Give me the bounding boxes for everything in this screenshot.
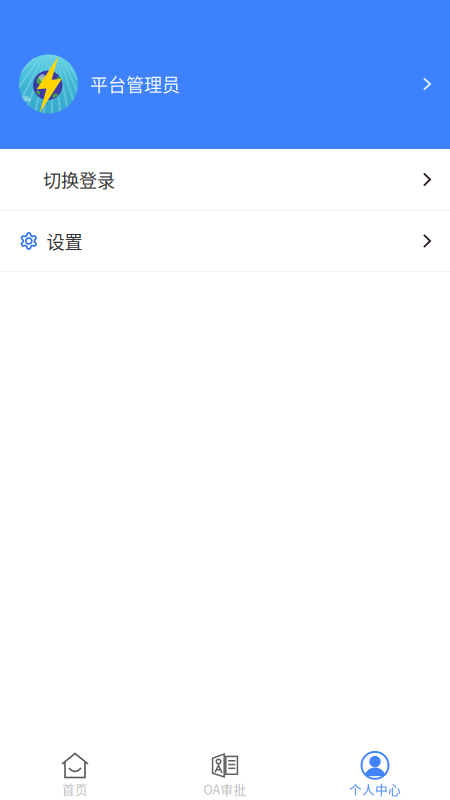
button[interactable]: OA审批: [150, 733, 300, 800]
staticText: OA审批: [203, 780, 246, 798]
button[interactable]: 设置: [0, 211, 450, 271]
staticText: 切换登录: [43, 166, 115, 193]
button[interactable]: 平台管理员: [0, 0, 450, 149]
button[interactable]: 切换登录: [0, 149, 450, 210]
staticText: 个人中心: [349, 780, 401, 798]
staticText: 平台管理员: [90, 71, 180, 97]
staticText: 首页: [62, 780, 88, 798]
button[interactable]: 个人中心: [300, 733, 450, 800]
button[interactable]: 首页: [0, 733, 150, 800]
staticText: 设置: [47, 228, 83, 254]
